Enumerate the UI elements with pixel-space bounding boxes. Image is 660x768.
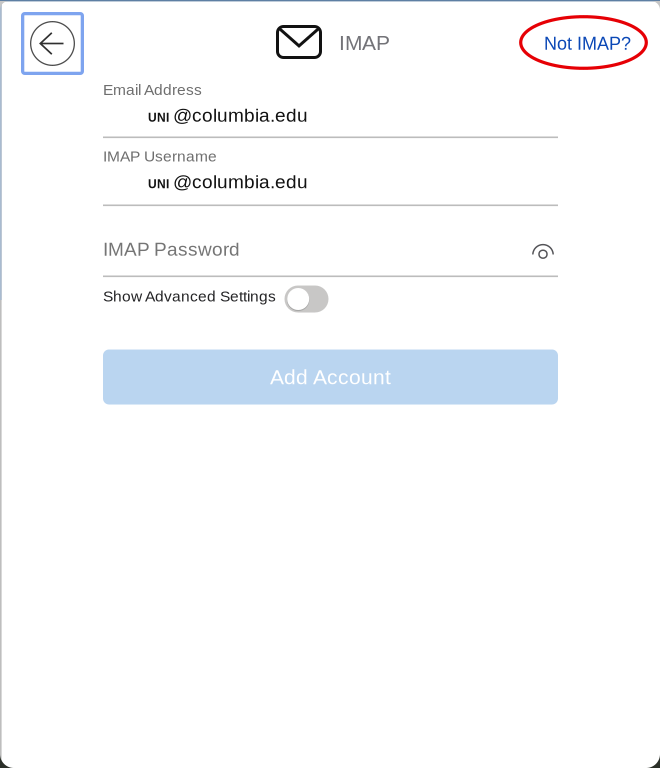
button[interactable]: Back <box>21 12 84 75</box>
staticText: @columbia.edu <box>173 171 308 192</box>
staticText: UNI <box>148 177 169 191</box>
staticText: Add Account <box>270 365 391 389</box>
staticText: IMAP Username <box>103 147 217 165</box>
button[interactable]: Add Account <box>103 349 558 404</box>
staticText: @columbia.edu <box>173 104 308 126</box>
button[interactable]: Show Advanced Settings <box>284 285 328 312</box>
button[interactable]: Show password <box>527 240 559 264</box>
staticText: Email Address <box>103 81 202 98</box>
staticText: IMAP <box>339 31 390 54</box>
button[interactable]: Not IMAP? <box>519 15 648 70</box>
staticText: IMAP Password <box>103 238 240 260</box>
staticText: UNI <box>148 111 169 124</box>
staticText: Not IMAP? <box>544 33 631 53</box>
staticText: Show Advanced Settings <box>103 287 276 305</box>
